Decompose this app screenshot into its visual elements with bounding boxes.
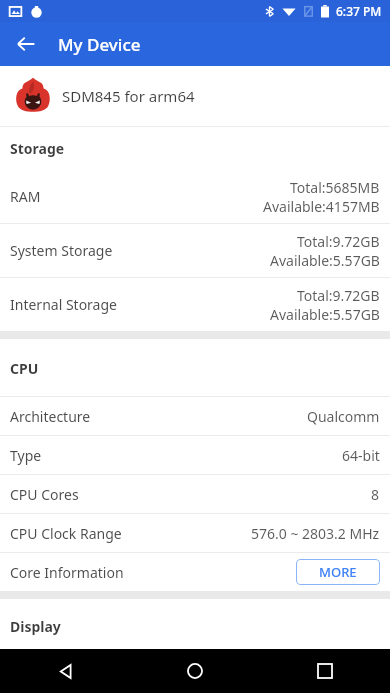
button[interactable]: RAM xyxy=(0,170,390,223)
staticText: My Device xyxy=(58,33,141,56)
button[interactable]: Architecture xyxy=(0,397,390,435)
staticText: CPU Cores xyxy=(10,485,371,504)
staticText: Display xyxy=(10,617,61,636)
staticText: System Storage xyxy=(10,241,270,260)
button[interactable]: MORE xyxy=(296,559,380,585)
button[interactable]: Back xyxy=(6,24,46,64)
staticText: SDM845 for arm64 xyxy=(62,86,195,106)
staticText: CPU Clock Range xyxy=(10,524,251,543)
staticText: Total:5685MB xyxy=(290,178,380,197)
staticText: Type xyxy=(10,446,342,465)
staticText: Available:5.57GB xyxy=(270,305,380,324)
staticText: CPU xyxy=(10,359,39,378)
button[interactable]: Internal Storage xyxy=(0,278,390,331)
staticText: Qualcomm xyxy=(307,407,380,426)
staticText: Total:9.72GB xyxy=(297,286,380,305)
staticText: 64-bit xyxy=(342,446,380,465)
staticText: Core Information xyxy=(10,563,296,582)
button[interactable]: CPU Cores xyxy=(0,475,390,513)
button[interactable]: Home xyxy=(130,649,260,693)
button[interactable]: Recent apps xyxy=(260,649,390,693)
staticText: Total:9.72GB xyxy=(297,232,380,251)
staticText: 576.0 ~ 2803.2 MHz xyxy=(251,524,380,543)
button[interactable]: System Storage xyxy=(0,224,390,277)
staticText: Storage xyxy=(10,139,65,158)
staticText: 8 xyxy=(371,485,380,504)
button[interactable]: Back xyxy=(0,649,130,693)
staticText: Architecture xyxy=(10,407,307,426)
button[interactable]: CPU Clock Range xyxy=(0,514,390,552)
staticText: MORE xyxy=(319,563,357,581)
staticText: Available:5.57GB xyxy=(270,251,380,270)
button[interactable]: Type xyxy=(0,436,390,474)
staticText: 6:37 PM xyxy=(336,3,382,19)
staticText: RAM xyxy=(10,187,263,206)
button[interactable]: SDM845 for arm64 xyxy=(0,66,390,126)
staticText: Available:4157MB xyxy=(263,197,380,216)
staticText: Internal Storage xyxy=(10,295,270,314)
